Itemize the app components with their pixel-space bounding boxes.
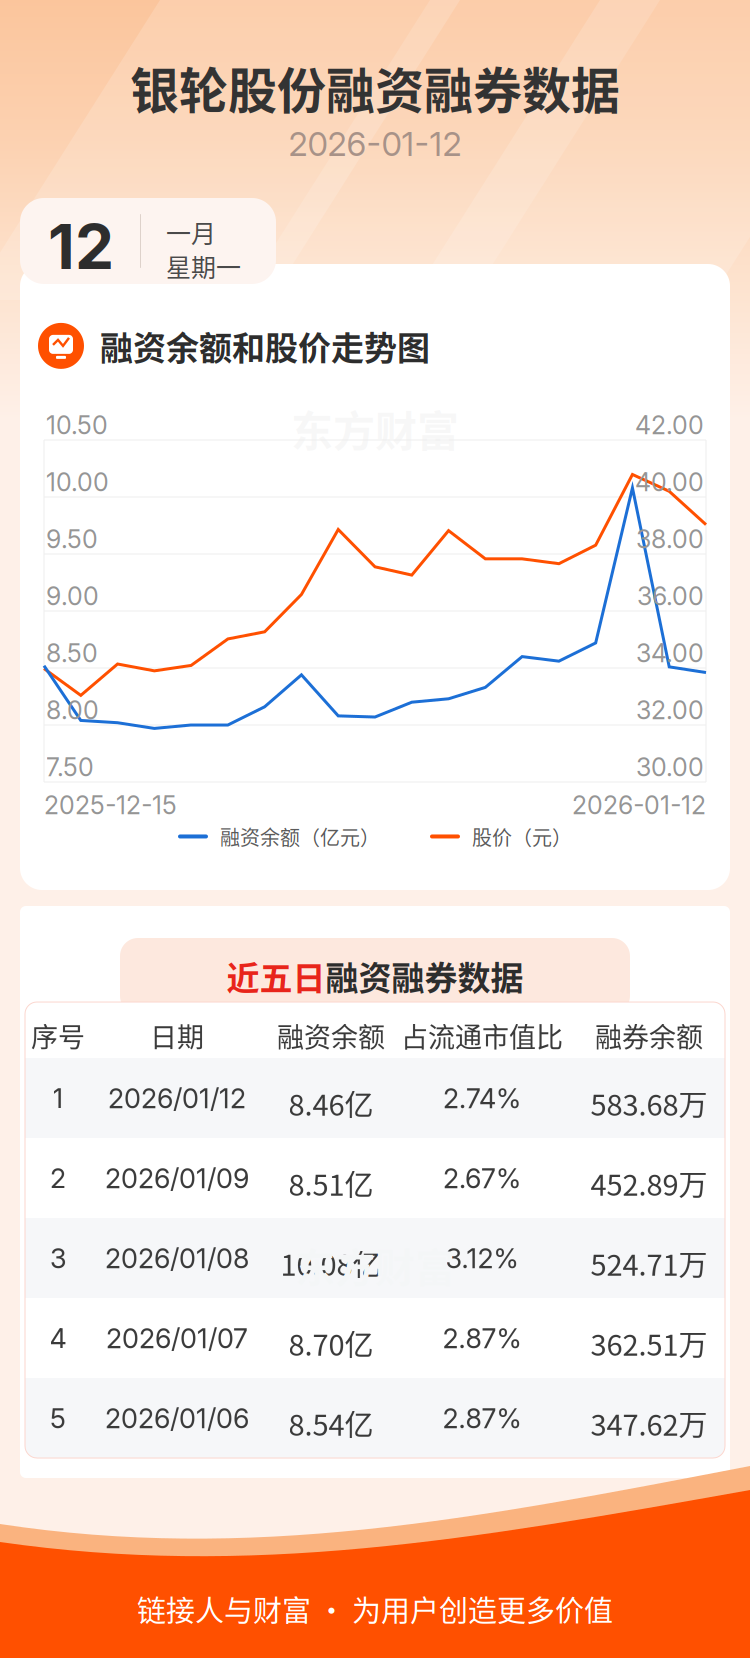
staticText: 362.51万 bbox=[590, 1322, 707, 1364]
staticText: 融资余额 bbox=[277, 1016, 385, 1055]
staticText: 30.00 bbox=[636, 752, 704, 782]
staticText: 347.62万 bbox=[590, 1402, 707, 1444]
staticText: 2.87% bbox=[442, 1322, 521, 1355]
staticText: 2026/01/07 bbox=[106, 1322, 248, 1355]
staticText: 链接人与财富 · 为用户创造更多价值 bbox=[137, 1588, 613, 1630]
staticText: 452.89万 bbox=[590, 1162, 707, 1204]
staticText: 8.70亿 bbox=[288, 1322, 373, 1364]
staticText: 星期一 bbox=[166, 248, 241, 284]
staticText: 10.08亿 bbox=[280, 1242, 381, 1284]
staticText: 38.00 bbox=[636, 524, 704, 554]
staticText: 42.00 bbox=[635, 410, 704, 440]
staticText: 10.50 bbox=[46, 410, 108, 440]
staticText: 序号 bbox=[31, 1016, 85, 1055]
staticText: 36.00 bbox=[637, 581, 704, 611]
staticText: 2 bbox=[50, 1162, 66, 1195]
staticText: 2026-01-12 bbox=[288, 124, 461, 164]
staticText: 2026/01/06 bbox=[105, 1402, 249, 1435]
staticText: 2026/01/09 bbox=[105, 1162, 249, 1195]
staticText: 5 bbox=[50, 1402, 66, 1435]
staticText: 8.54亿 bbox=[288, 1402, 373, 1444]
staticText: 3 bbox=[50, 1242, 66, 1275]
staticText: 融资余额（亿元） bbox=[220, 822, 380, 851]
staticText: 8.46亿 bbox=[288, 1082, 373, 1124]
staticText: 32.00 bbox=[636, 695, 704, 725]
staticText: 1 bbox=[52, 1082, 63, 1115]
staticText: 2025-12-15 bbox=[44, 790, 177, 820]
staticText: 9.50 bbox=[46, 524, 98, 554]
staticText: 2.74% bbox=[443, 1082, 521, 1115]
staticText: 8.50 bbox=[46, 638, 98, 668]
staticText: 2.67% bbox=[443, 1162, 521, 1195]
staticText: 8.51亿 bbox=[288, 1162, 373, 1204]
staticText: 3.12% bbox=[445, 1242, 518, 1275]
staticText: 10.00 bbox=[46, 467, 109, 497]
staticText: 融资融券数据 bbox=[325, 952, 523, 1000]
staticText: 股价（元） bbox=[472, 822, 572, 851]
staticText: 40.00 bbox=[635, 467, 704, 497]
staticText: 银轮股份融资融券数据 bbox=[130, 52, 620, 123]
staticText: 7.50 bbox=[46, 752, 94, 782]
staticText: 融券余额 bbox=[595, 1016, 703, 1055]
staticText: 583.68万 bbox=[590, 1082, 707, 1124]
staticText: 12 bbox=[48, 209, 114, 284]
staticText: 34.00 bbox=[636, 638, 704, 668]
staticText: 9.00 bbox=[46, 581, 99, 611]
staticText: 东方财富 bbox=[291, 398, 459, 459]
staticText: 4 bbox=[49, 1322, 66, 1355]
staticText: 8.00 bbox=[46, 695, 99, 725]
staticText: 日期 bbox=[150, 1016, 204, 1055]
staticText: 近五日 bbox=[226, 952, 325, 1000]
staticText: 2026/01/08 bbox=[105, 1242, 249, 1275]
staticText: 2.87% bbox=[442, 1402, 521, 1435]
staticText: 2026-01-12 bbox=[572, 790, 706, 820]
staticText: 一月 bbox=[166, 214, 216, 250]
staticText: 524.71万 bbox=[590, 1242, 707, 1284]
staticText: 东方财富 bbox=[295, 1236, 455, 1294]
staticText: 2026/01/12 bbox=[108, 1082, 246, 1115]
staticText: 融资余额和股价走势图 bbox=[100, 322, 430, 370]
staticText: 占流通市值比 bbox=[401, 1016, 563, 1055]
